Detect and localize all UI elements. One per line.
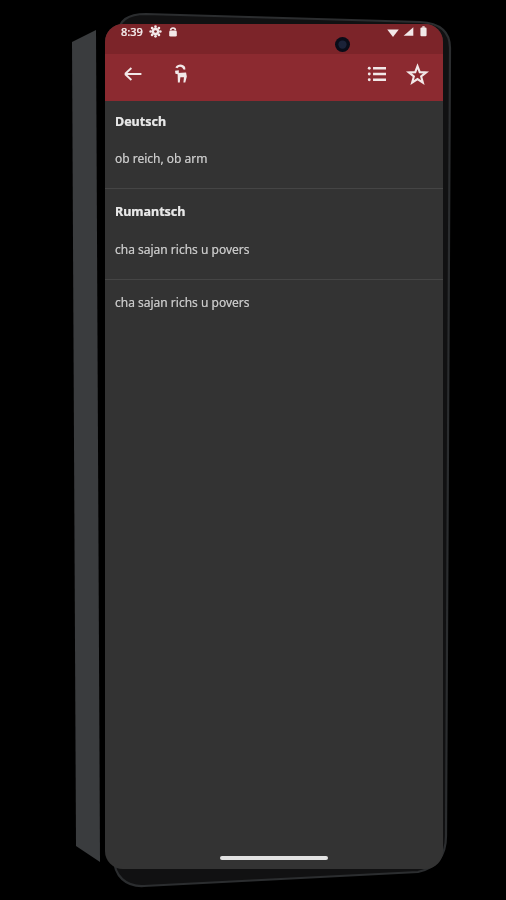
staticText: cha sajan richs u povers [115, 294, 250, 310]
button[interactable]: cha sajan richs u povers [105, 241, 443, 257]
button[interactable]: Favorite [397, 54, 437, 94]
button[interactable]: Rumantsch [105, 203, 443, 220]
button[interactable]: ob reich, ob arm [105, 150, 443, 166]
button[interactable]: cha sajan richs u povers [105, 294, 443, 310]
button[interactable]: Deutsch [105, 113, 443, 130]
staticText: Deutsch [115, 113, 167, 130]
staticText: cha sajan richs u povers [115, 241, 250, 257]
button[interactable]: Back [113, 54, 153, 94]
staticText: ob reich, ob arm [115, 150, 208, 166]
staticText: Rumantsch [115, 203, 186, 220]
button[interactable]: App logo [161, 54, 201, 94]
button[interactable]: List view [357, 54, 397, 94]
staticText: 8:39 [121, 24, 143, 39]
